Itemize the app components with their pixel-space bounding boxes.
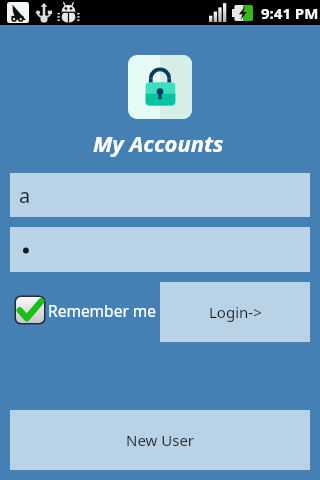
- button[interactable]: Login->: [160, 282, 310, 342]
- button[interactable]: [10, 227, 310, 272]
- button[interactable]: Remember me checkbox: [14, 293, 157, 327]
- other: Debug app: [7, 2, 29, 23]
- other: Remember me checkbox: [14, 295, 46, 325]
- button[interactable]: a: [10, 173, 310, 217]
- button[interactable]: New User: [10, 410, 310, 470]
- staticText: Remember me: [48, 300, 157, 321]
- staticText: New User: [126, 430, 195, 450]
- staticText: a: [19, 182, 31, 209]
- staticText: Login->: [209, 302, 262, 322]
- staticText: My Accounts: [93, 128, 224, 158]
- staticText: 9:41 PM: [261, 3, 319, 23]
